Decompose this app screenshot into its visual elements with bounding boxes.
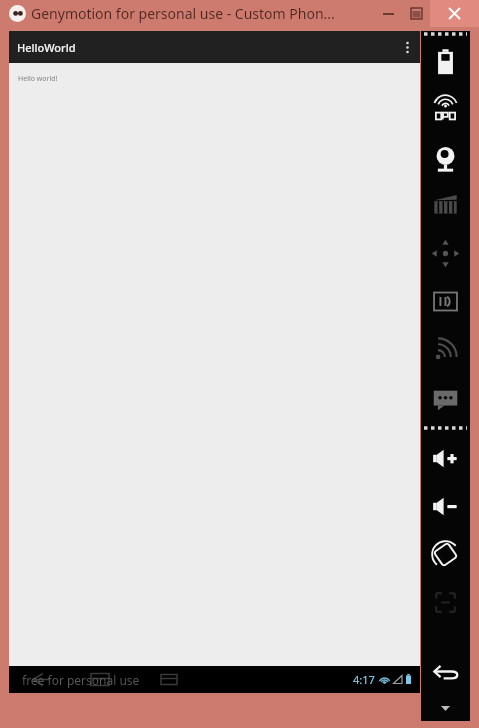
staticText: free for personal use <box>22 672 140 688</box>
button[interactable]: Network <box>421 325 470 373</box>
button[interactable]: Volume up <box>421 434 470 482</box>
button[interactable]: Camera <box>421 133 470 181</box>
button[interactable]: SMS <box>421 373 470 421</box>
button[interactable]: Volume down <box>421 482 470 530</box>
button[interactable]: Maximize <box>402 0 430 27</box>
staticText: Hello world! <box>18 74 58 84</box>
button[interactable]: Fullscreen <box>421 578 470 626</box>
button[interactable]: More options <box>394 31 420 63</box>
button[interactable]: Minimize <box>374 0 402 27</box>
button[interactable]: More <box>421 695 470 721</box>
button[interactable]: Battery <box>421 37 470 85</box>
button[interactable]: Close <box>430 0 479 27</box>
button[interactable]: GPS <box>421 85 470 133</box>
button[interactable]: Move <box>421 229 470 277</box>
button[interactable]: Identifiers <box>421 277 470 325</box>
staticText: Genymotion for personal use - Custom Pho… <box>31 4 335 23</box>
staticText: HelloWorld <box>17 40 76 55</box>
button[interactable]: Screen record <box>421 181 470 229</box>
button[interactable]: Rotate <box>421 530 470 578</box>
button[interactable]: Back <box>421 647 470 695</box>
staticText: 4:17 <box>353 672 375 687</box>
